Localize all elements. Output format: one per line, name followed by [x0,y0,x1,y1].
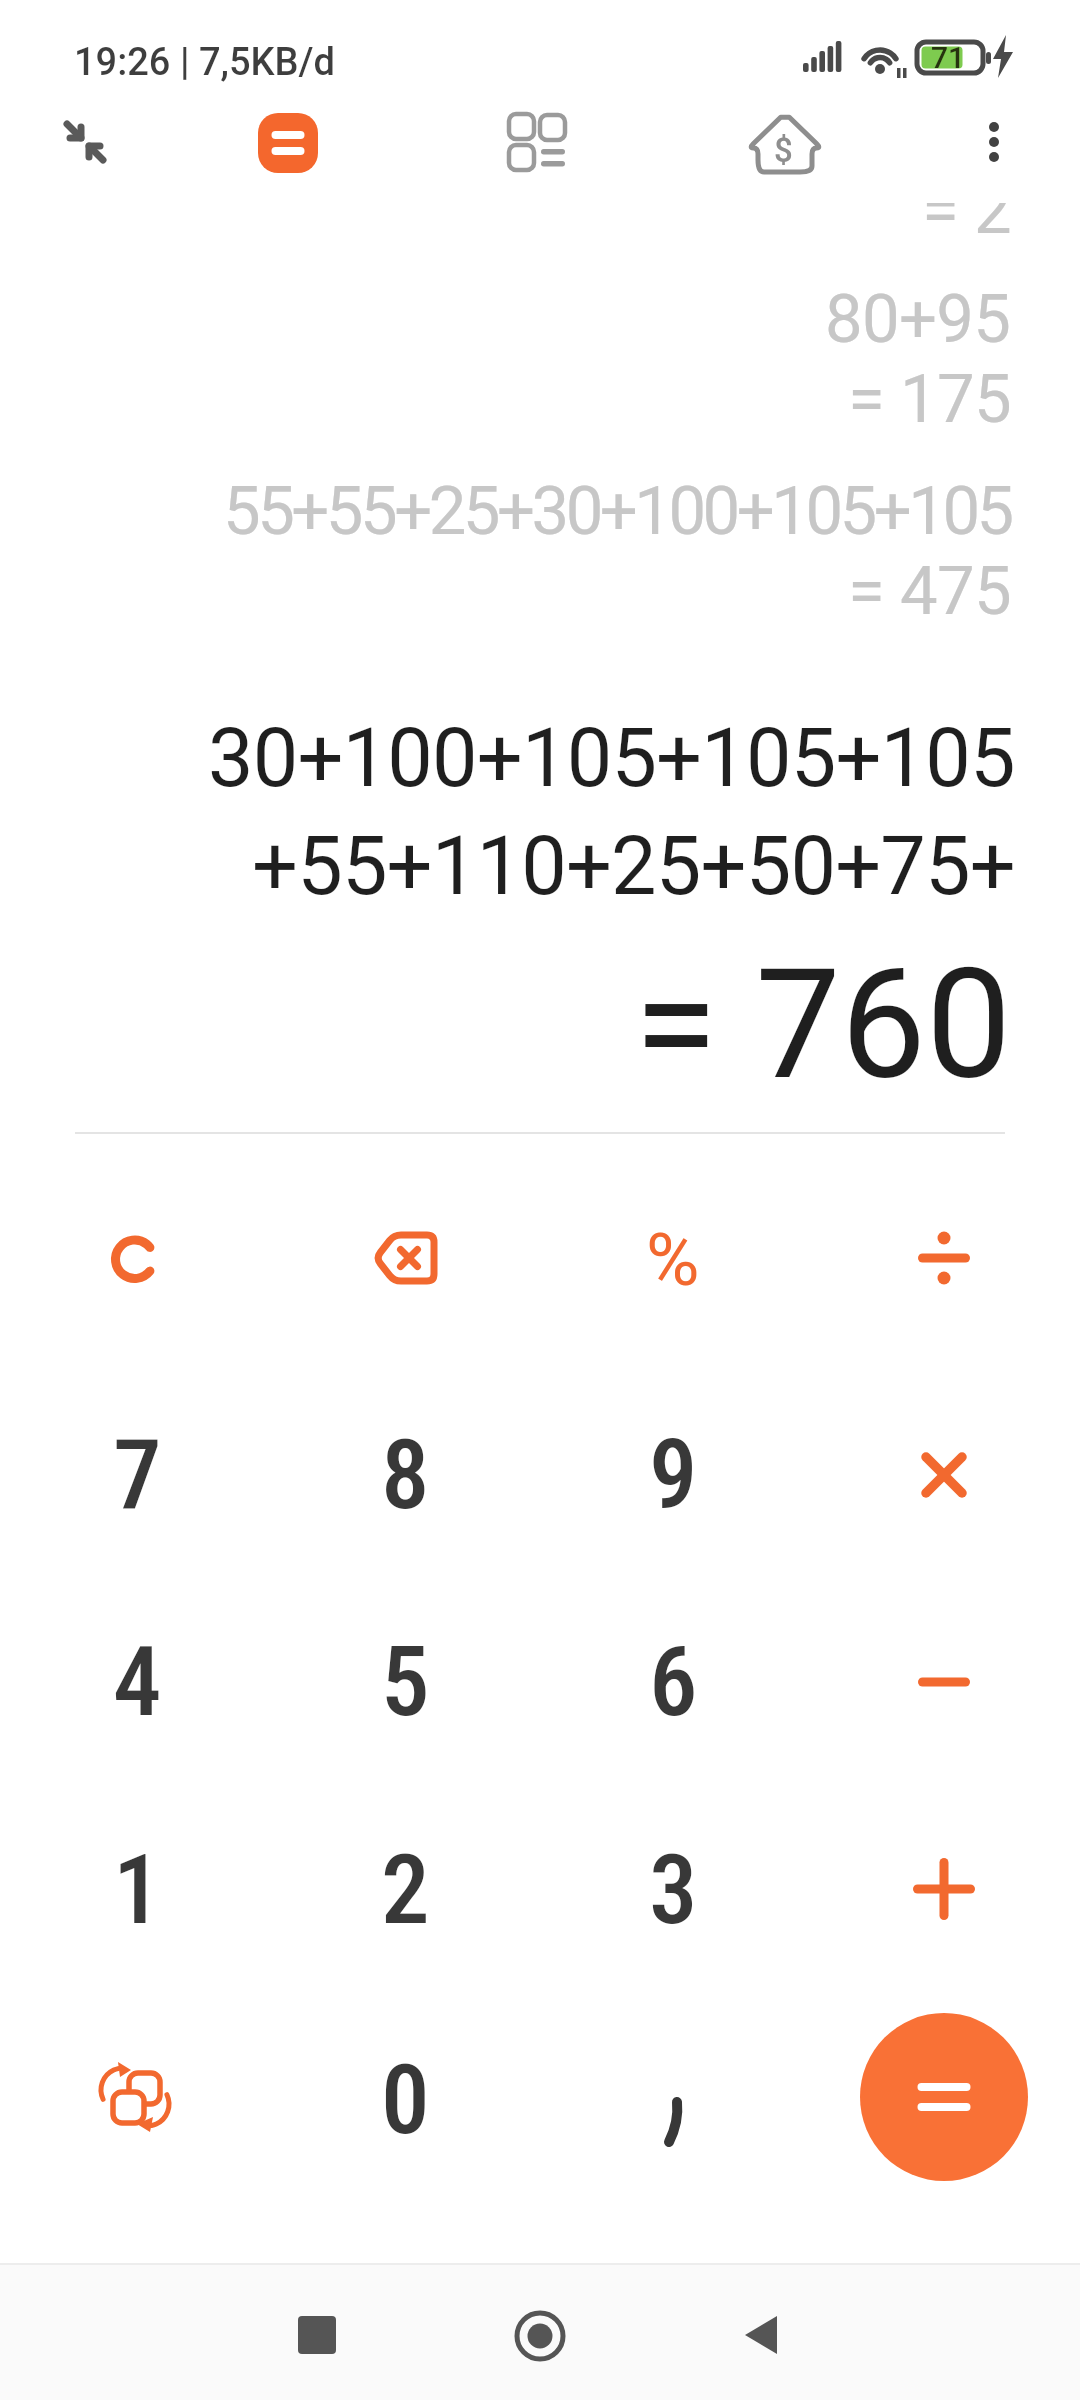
button[interactable] [586,2033,766,2213]
staticText: = 760 [634,936,1012,1114]
button[interactable] [854,1168,1034,1348]
button[interactable] [47,1170,227,1350]
button[interactable]: 2 [315,1800,495,1980]
button[interactable]: 1 [47,1800,227,1980]
staticText: 30+100+105+105+105 [208,711,1015,806]
button[interactable] [854,1592,1034,1772]
staticText: 7 [113,1418,162,1532]
staticText: 71 [931,40,966,75]
staticText: 3 [649,1833,698,1947]
staticText: % [646,1217,700,1303]
staticText: = 175 [848,360,1011,439]
button[interactable] [860,2013,1028,2181]
button[interactable]: % [583,1170,763,1350]
button[interactable] [48,104,124,180]
staticText: 1 [113,1833,162,1947]
button[interactable]: 7 [47,1385,227,1565]
button[interactable] [854,1385,1034,1565]
button[interactable]: $ [741,100,829,188]
button[interactable] [470,2265,610,2399]
button[interactable]: 8 [315,1385,495,1565]
staticText: 4 [113,1625,162,1739]
button[interactable] [497,100,577,180]
staticText: 6 [649,1625,698,1739]
staticText: = 2 [922,203,1011,233]
staticText: = 475 [848,552,1011,631]
button[interactable] [47,2008,227,2188]
staticText: +55+110+25+50+75+ [252,819,1015,914]
button[interactable] [247,2265,387,2399]
staticText: $ [774,131,793,170]
button[interactable] [958,104,1030,176]
button[interactable] [315,1168,495,1348]
button[interactable]: 4 [47,1592,227,1772]
staticText: 80+95 [825,280,1011,359]
staticText: 19:26 | 7,5KB/d [74,40,335,85]
staticText: 9 [649,1418,698,1532]
staticText: 8 [381,1418,430,1532]
button[interactable] [258,113,318,173]
button[interactable]: 6 [583,1592,763,1772]
staticText: 2 [381,1833,430,1947]
staticText: 55+55+25+30+100+105+105 [223,472,1011,551]
button[interactable] [854,1799,1034,1979]
button[interactable]: 0 [315,2010,495,2190]
staticText: 5 [381,1625,430,1739]
button[interactable]: 5 [315,1592,495,1772]
button[interactable] [691,2265,831,2399]
button[interactable]: 9 [583,1385,763,1565]
button[interactable]: 3 [583,1800,763,1980]
staticText: 0 [381,2043,430,2157]
